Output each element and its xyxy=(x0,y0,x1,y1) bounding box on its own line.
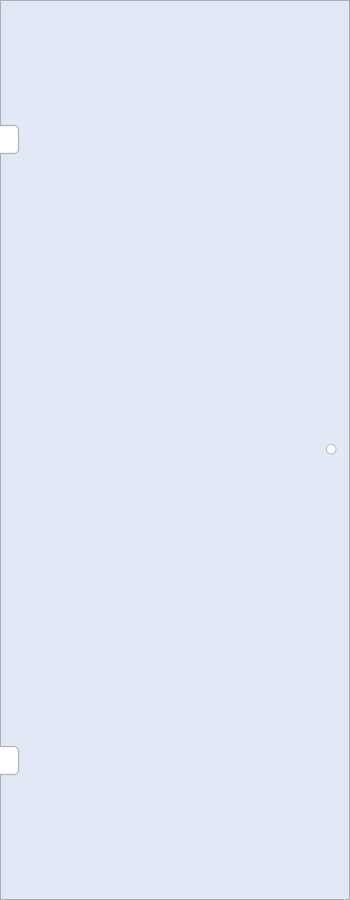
button[interactable]: Menu xyxy=(0,746,19,775)
button[interactable]: Back xyxy=(0,125,19,154)
